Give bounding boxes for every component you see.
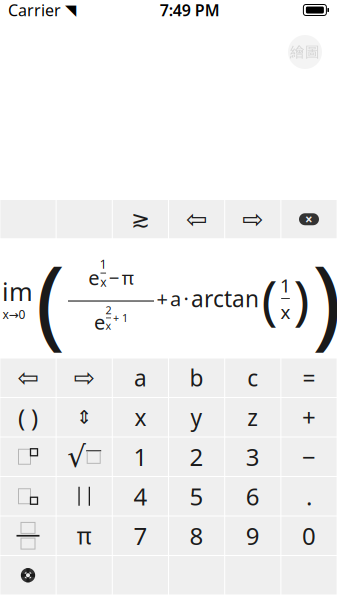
button[interactable]: x [113,398,168,436]
staticText: ) [312,233,337,364]
staticText: 2 [190,441,204,473]
staticText: √ [67,440,86,473]
staticText: x [134,402,146,432]
staticText: ⇕ [76,407,92,428]
staticText: 2 [105,303,111,317]
button[interactable]: 0 [281,516,337,555]
staticText: ⇨ [242,205,263,234]
staticText: 1 [100,256,107,272]
staticText: . [306,480,312,512]
button[interactable]: ( ) [0,398,56,436]
staticText: x→0 [2,306,25,322]
staticText: × [305,210,313,228]
button[interactable]: 7 [113,516,168,555]
staticText: y [191,402,203,432]
button[interactable]: 8 [169,516,224,555]
button[interactable]: Delete [281,200,337,238]
staticText: · [183,285,188,312]
staticText: x [105,319,111,333]
staticText: a [170,285,181,312]
button[interactable]: π [57,516,112,555]
button[interactable]: 6 [225,477,280,515]
button[interactable]: a [113,358,168,397]
button[interactable]: Fraction [0,516,56,555]
button[interactable]: 2 [169,437,224,476]
button[interactable]: Subscript [0,477,56,515]
button[interactable]: 5 [169,477,224,515]
button[interactable]: 繪圖 [288,35,322,69]
staticText: ( [261,263,277,334]
button[interactable]: Absolute value [57,477,112,515]
button[interactable]: ⇨ [225,200,280,238]
staticText: arctan [191,283,259,313]
staticText: ◥ [65,2,76,18]
staticText: ( [35,233,65,364]
staticText: − [302,441,316,473]
staticText: ⇦ [17,363,38,392]
staticText: lim [0,275,33,308]
staticText: 4 [133,480,147,512]
staticText: x [280,299,290,324]
button[interactable]: 3 [225,437,280,476]
staticText: 6 [246,480,260,512]
button[interactable]: ≳ [113,200,168,238]
staticText: 0 [302,520,316,552]
button[interactable]: c [225,358,280,397]
staticText: 5 [190,480,204,512]
staticText: 1 [280,273,291,298]
button[interactable]: 4 [113,477,168,515]
staticText: 7:49 PM [160,0,220,21]
staticText: 9 [246,520,260,552]
button[interactable]: + [281,398,337,436]
staticText: ⇨ [74,363,95,392]
button[interactable]: Exponent [0,437,56,476]
button[interactable]: . [281,477,337,515]
staticText: z [247,402,258,432]
button[interactable]: b [169,358,224,397]
staticText: 7 [133,520,147,552]
staticText: π [77,521,92,551]
button[interactable]: ⇨ [57,358,112,397]
button[interactable]: = [281,358,337,397]
staticText: + 1 [113,311,128,325]
staticText: 1 [133,441,147,473]
button[interactable]: − [281,437,337,476]
staticText: e [88,264,99,291]
staticText: ⇦ [186,205,207,234]
button[interactable]: ⇕ [57,398,112,436]
staticText: − [109,265,120,290]
button[interactable]: y [169,398,224,436]
staticText: + [156,285,167,312]
staticText: e [94,309,105,335]
staticText: + [302,401,316,433]
staticText: ≳ [131,206,150,232]
staticText: 繪圖 [290,43,320,61]
staticText: 3 [246,441,260,473]
staticText: c [247,363,258,393]
staticText: ( ) [18,401,38,433]
staticText: a [134,363,147,393]
button[interactable]: ⇦ [0,358,56,397]
staticText: ) [293,263,309,334]
button[interactable]: 9 [225,516,280,555]
button[interactable]: ⇦ [169,200,224,238]
staticText: = [302,363,315,393]
staticText: 8 [190,520,204,552]
staticText: b [190,363,204,393]
button[interactable]: z [225,398,280,436]
staticText: π [122,265,134,290]
staticText: Carrier [8,0,61,21]
button[interactable]: 1 [113,437,168,476]
button[interactable]: Square root [57,437,112,476]
staticText: x [100,274,106,290]
button[interactable]: Settings [0,556,56,594]
